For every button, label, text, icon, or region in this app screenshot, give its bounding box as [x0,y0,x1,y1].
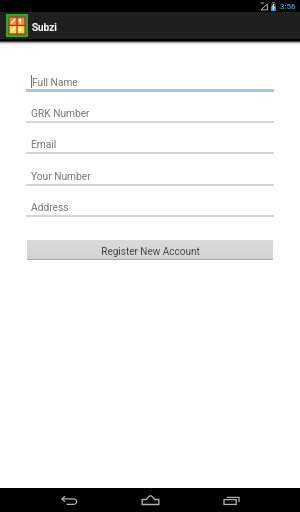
staticText: GRK Number [31,108,90,120]
button[interactable]: Recent apps [203,488,259,512]
staticText: Full Name [32,77,78,89]
button[interactable]: Full Name [26,61,274,92]
button[interactable]: Home [122,488,178,512]
button[interactable]: Address [26,186,274,217]
staticText: Address [31,202,69,214]
staticText: 3:56 [280,2,296,11]
button[interactable]: Your Number [26,155,274,186]
button[interactable]: Back [41,488,97,512]
staticText: Register New Account [101,246,200,258]
button[interactable]: GRK Number [26,92,274,123]
staticText: Your Number [31,171,91,183]
button[interactable]: Register New Account [27,240,273,260]
staticText: Email [31,139,57,151]
button[interactable]: Email [26,123,274,154]
staticText: Subzi [32,22,57,34]
